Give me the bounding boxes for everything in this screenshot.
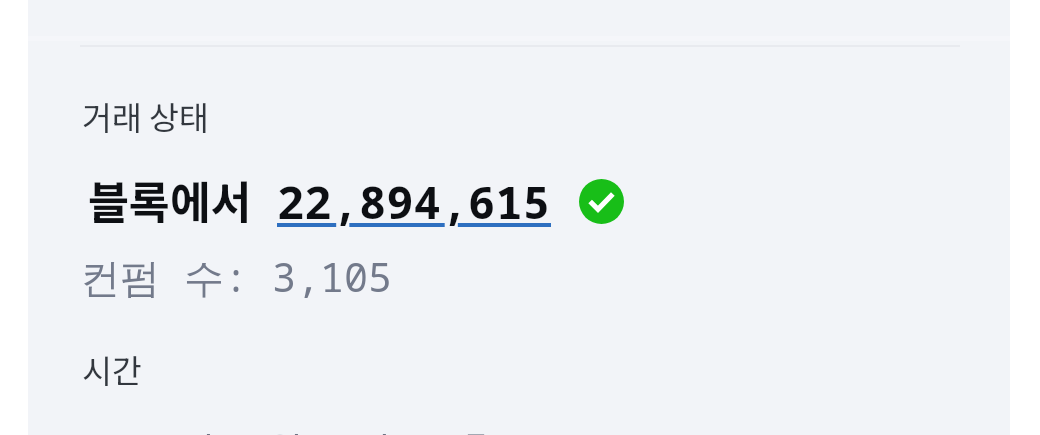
- staticText: 거래 상태: [82, 92, 209, 139]
- staticText: 2025년 7월 3일 오후 2:22: [80, 421, 616, 435]
- staticText: 시간: [82, 345, 142, 392]
- staticText: 블록에서: [88, 167, 252, 231]
- staticText: 컨펌 수: 3,105: [80, 249, 392, 304]
- button[interactable]: 22,894,615: [277, 170, 551, 232]
- staticText: 22,894,615: [277, 170, 551, 232]
- button[interactable]: Confirmed: [579, 179, 624, 224]
